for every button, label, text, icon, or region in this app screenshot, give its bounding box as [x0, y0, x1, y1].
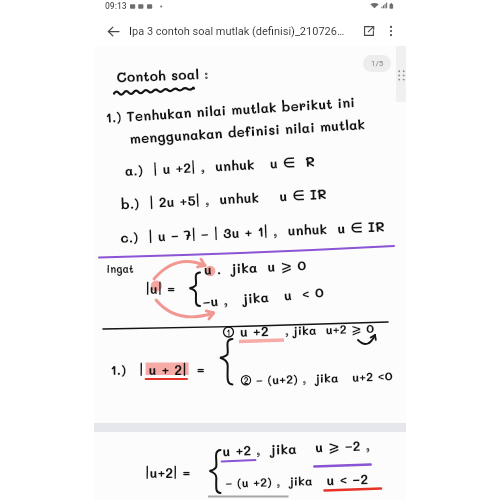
staticText: 1/5 [371, 59, 384, 68]
button[interactable]: Open in new window [357, 19, 380, 42]
staticText: 09:13 [105, 1, 127, 11]
button[interactable]: Back [101, 19, 125, 43]
button[interactable]: More options [379, 19, 402, 42]
button[interactable]: 1/5 [363, 55, 391, 72]
staticText: Ipa 3 contoh soal mutlak (definisi)_2107… [129, 25, 349, 38]
button[interactable]: Scroll [396, 46, 406, 102]
